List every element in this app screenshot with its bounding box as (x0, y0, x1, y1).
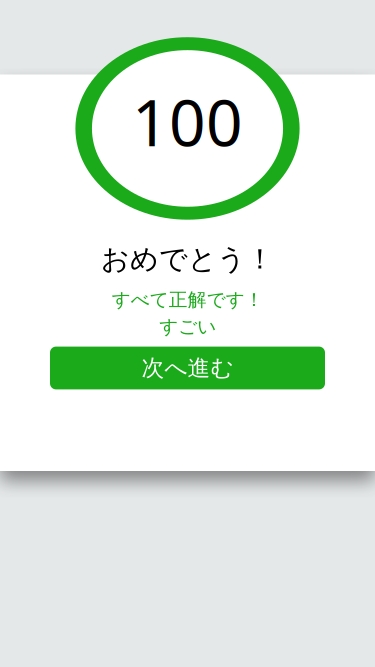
staticText: 次へ進む (141, 354, 233, 382)
staticText: おめでとう！ (101, 242, 274, 276)
staticText: 100 (132, 79, 243, 164)
button[interactable]: 次へ進む (50, 347, 325, 389)
staticText: すべて正解です！ すごい (111, 288, 263, 338)
